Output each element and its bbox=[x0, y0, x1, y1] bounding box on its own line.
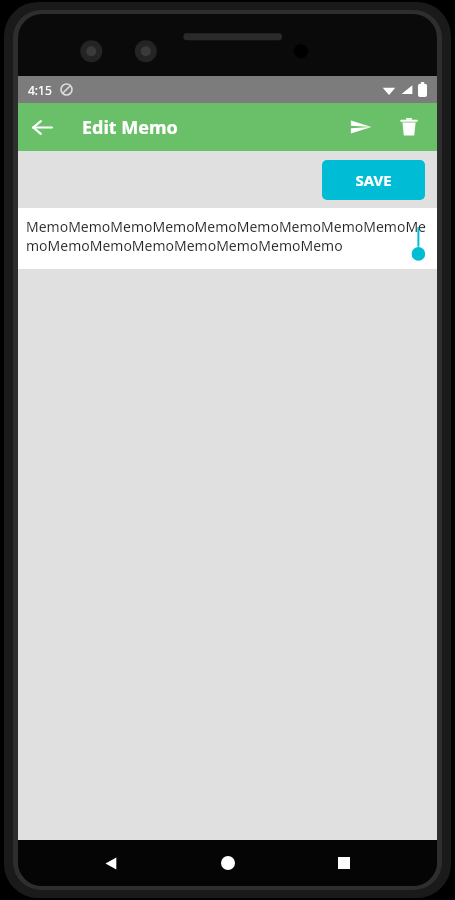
button[interactable]: Delete bbox=[385, 103, 433, 151]
staticText: SAVE bbox=[355, 170, 392, 190]
staticText: MemoMemoMemoMemoMemoMemoMemoMemoMemoMemo… bbox=[26, 217, 432, 255]
button[interactable]: Recent apps bbox=[321, 840, 367, 886]
button[interactable]: Send bbox=[337, 103, 385, 151]
button[interactable]: Back bbox=[88, 840, 134, 886]
button[interactable]: Back bbox=[18, 103, 66, 151]
staticText: Edit Memo bbox=[82, 115, 178, 140]
button[interactable]: MemoMemoMemoMemoMemoMemoMemoMemoMemoMemo… bbox=[18, 208, 437, 269]
button[interactable]: SAVE bbox=[322, 160, 425, 200]
button[interactable]: Home bbox=[205, 840, 251, 886]
staticText: 4:15 bbox=[28, 82, 52, 98]
